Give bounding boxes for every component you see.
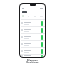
staticText: Bookings: [26, 61, 39, 63]
button[interactable]: [20, 34, 45, 40]
button[interactable]: [20, 41, 45, 47]
button[interactable]: [20, 55, 45, 57]
staticText: Manage: [27, 59, 38, 61]
button[interactable]: [20, 20, 45, 26]
button[interactable]: [20, 27, 45, 33]
button[interactable]: [20, 48, 45, 54]
